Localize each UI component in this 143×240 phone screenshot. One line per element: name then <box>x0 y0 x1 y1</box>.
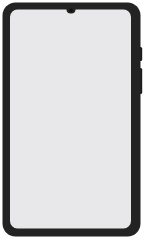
button[interactable]: Smartphone illustration <box>0 0 143 240</box>
